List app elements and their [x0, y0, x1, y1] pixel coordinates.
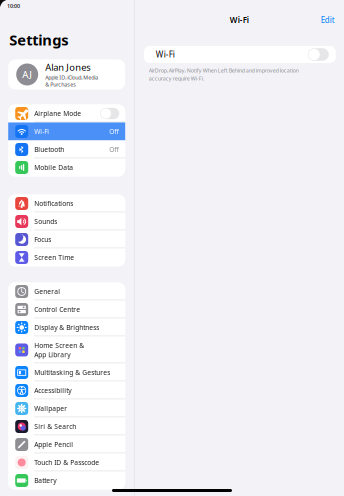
staticText: Wi-Fi: [230, 15, 249, 25]
staticText: App Library: [34, 350, 70, 359]
button[interactable]: Sounds: [8, 212, 125, 230]
staticText: Display & Brightness: [34, 323, 99, 332]
staticText: accuracy require Wi-Fi.: [149, 75, 204, 82]
staticText: Battery: [34, 476, 56, 485]
staticText: Screen Time: [34, 253, 74, 262]
staticText: Sounds: [34, 217, 57, 226]
staticText: Siri & Search: [34, 422, 76, 431]
staticText: AJ: [22, 68, 32, 81]
staticText: Settings: [9, 30, 68, 49]
button[interactable]: Battery: [8, 471, 125, 489]
button[interactable]: Airplane Mode: [8, 104, 125, 122]
staticText: Airplane Mode: [34, 109, 81, 118]
button[interactable]: Edit: [321, 13, 344, 27]
button[interactable]: Wi-Fi: [8, 122, 125, 140]
staticText: AirDrop, AirPlay, Notify When Left Behin…: [149, 67, 299, 74]
button[interactable]: Focus: [8, 230, 125, 248]
staticText: Accessibility: [34, 386, 71, 395]
button[interactable]: Wallpaper: [8, 399, 125, 417]
staticText: Notifications: [34, 199, 73, 208]
staticText: 10:00: [7, 2, 20, 9]
button[interactable]: Siri & Search: [8, 417, 125, 435]
button[interactable]: Wi-Fi: [144, 46, 336, 63]
staticText: Control Centre: [34, 305, 80, 314]
staticText: Wallpaper: [34, 404, 67, 413]
staticText: Apple Pencil: [34, 440, 73, 449]
button[interactable]: Screen Time: [8, 248, 125, 266]
button[interactable]: Apple Pencil: [8, 435, 125, 453]
staticText: Apple ID, iCloud, Media: [45, 74, 98, 81]
staticText: Mobile Data: [34, 163, 73, 172]
button[interactable]: Home Screen &: [8, 336, 125, 363]
button[interactable]: Touch ID & Passcode: [8, 453, 125, 471]
staticText: Wi-Fi: [156, 49, 175, 60]
staticText: Home Screen &: [34, 341, 84, 350]
staticText: Off: [109, 145, 119, 154]
staticText: Wi-Fi: [34, 127, 49, 136]
button[interactable]: AJ: [8, 59, 125, 89]
staticText: Off: [109, 127, 119, 136]
button[interactable]: Multitasking & Gestures: [8, 363, 125, 381]
staticText: Touch ID & Passcode: [34, 458, 99, 467]
staticText: & Purchases: [45, 81, 76, 88]
button[interactable]: Mobile Data: [8, 158, 125, 176]
staticText: Alan Jones: [45, 61, 90, 73]
button[interactable]: Display & Brightness: [8, 318, 125, 336]
button[interactable]: Accessibility: [8, 381, 125, 399]
staticText: Focus: [34, 235, 51, 244]
button[interactable]: Notifications: [8, 194, 125, 212]
staticText: Edit: [321, 15, 335, 25]
button[interactable]: General: [8, 282, 125, 300]
staticText: Multitasking & Gestures: [34, 368, 110, 377]
staticText: Bluetooth: [34, 145, 64, 154]
button[interactable]: Bluetooth: [8, 140, 125, 158]
button[interactable]: Control Centre: [8, 300, 125, 318]
staticText: General: [34, 287, 60, 296]
